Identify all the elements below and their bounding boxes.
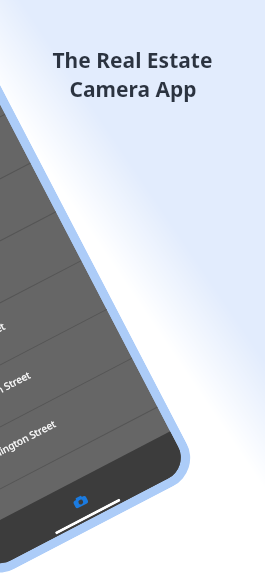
- staticText: 1230 Washington Street: [0, 319, 8, 383]
- button[interactable]: 1230 Washington Street: [0, 65, 5, 218]
- button[interactable]: 1230 Washington Street: [0, 114, 30, 266]
- staticText: The Real Estate: [52, 46, 213, 75]
- button[interactable]: 1230 Washington Street: [0, 260, 107, 413]
- staticText: 1230 Washington Street: [0, 416, 58, 481]
- button[interactable]: 1230 Washington Street: [0, 211, 81, 364]
- staticText: 1230 Washington Street: [0, 367, 33, 432]
- button[interactable]: 1230 Washington Street: [0, 358, 157, 510]
- button[interactable]: Camera: [71, 492, 90, 511]
- button[interactable]: 1230 Washington Street: [0, 163, 56, 315]
- button[interactable]: 1230 Washington Street: [0, 309, 132, 462]
- staticText: Camera App: [69, 75, 197, 104]
